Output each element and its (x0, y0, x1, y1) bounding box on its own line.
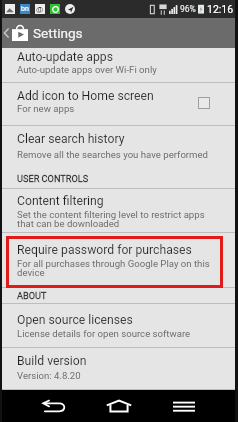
button[interactable]: Require password for purchases (0, 233, 238, 288)
button[interactable]: Add icon to Home screen (0, 82, 238, 126)
button[interactable]: Build version (0, 348, 238, 390)
button[interactable]: Content filtering (0, 189, 238, 233)
button[interactable]: Home (101, 390, 137, 422)
button[interactable]: Clear search history (0, 125, 238, 175)
staticText: USER CONTROLS (17, 173, 89, 184)
staticText: Remove all the searches you have perform… (17, 149, 209, 160)
staticText: Open source licenses (17, 313, 133, 327)
staticText: 12:16 (207, 3, 234, 15)
staticText: Auto-update apps over Wi-Fi only (17, 64, 213, 75)
staticText: Auto-update apps (17, 50, 113, 64)
staticText: License details for open source software (17, 328, 213, 339)
staticText: @ (36, 5, 44, 14)
staticText: Settings (33, 25, 83, 41)
button[interactable]: Open source licenses (0, 304, 238, 348)
button[interactable]: Back (36, 390, 72, 422)
button[interactable]: Auto-update apps (0, 49, 238, 83)
button[interactable]: Recent apps (166, 390, 202, 422)
staticText: For all purchases through Google Play on… (17, 258, 213, 279)
staticText: Add icon to Home screen (17, 89, 154, 103)
staticText: Build version (17, 354, 87, 368)
staticText: Require password for purchases (17, 243, 192, 257)
staticText: Version: 4.8.20 (17, 370, 213, 381)
staticText: Clear search history (17, 132, 125, 146)
staticText: bn (21, 5, 29, 13)
staticText: 96% (180, 4, 196, 14)
staticText: ABOUT (17, 290, 47, 301)
staticText: For new apps (17, 103, 213, 114)
staticText: Set the content filtering level to restr… (17, 209, 207, 230)
staticText: Content filtering (17, 194, 104, 208)
button[interactable]: Back (0, 18, 12, 48)
